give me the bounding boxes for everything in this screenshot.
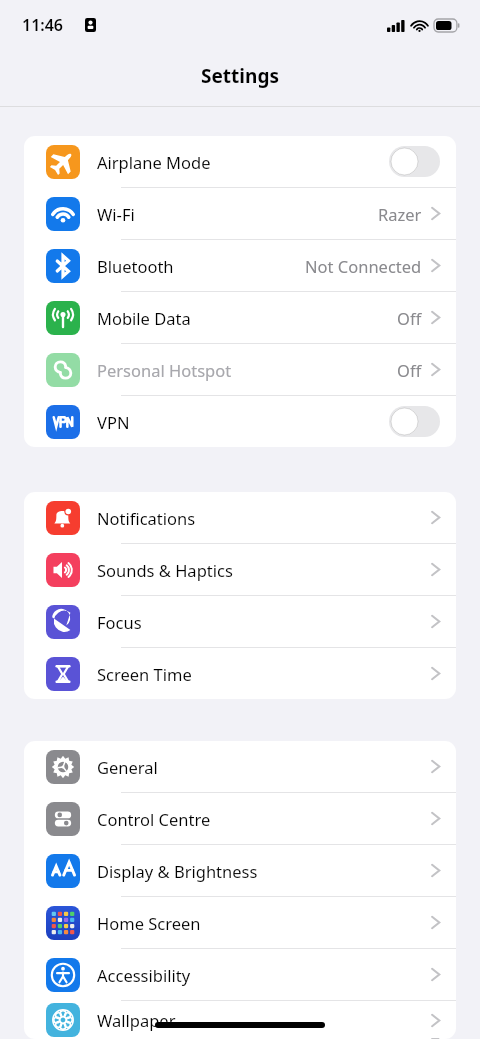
staticText: Settings [201,63,279,89]
button[interactable]: Mobile Data [24,292,456,343]
staticText: General [97,756,158,778]
staticText: Personal Hotspot [97,359,232,381]
staticText: Mobile Data [97,307,191,329]
staticText: Control Centre [97,808,211,830]
staticText: Focus [97,611,142,633]
button[interactable]: Personal Hotspot [24,344,456,395]
staticText: Notifications [97,507,196,529]
staticText: Wallpaper [97,1009,176,1031]
button[interactable]: Focus [24,596,456,647]
staticText: Screen Time [97,663,192,685]
button[interactable]: Toggle [389,406,440,437]
button[interactable]: General [24,741,456,792]
staticText: VPN [97,411,130,433]
staticText: 11:46 [22,14,64,36]
button[interactable]: Control Centre [24,793,456,844]
button[interactable]: Toggle [389,146,440,177]
button[interactable]: Wi-Fi [24,188,456,239]
staticText: Home Screen [97,912,201,934]
button[interactable]: Airplane Mode [24,136,456,187]
staticText: Accessibility [97,964,191,986]
button[interactable]: Home Screen [24,897,456,948]
button[interactable]: Sounds & Haptics [24,544,456,595]
staticText: Display & Brightness [97,860,258,882]
staticText: Airplane Mode [97,151,211,173]
staticText: Bluetooth [97,255,174,277]
button[interactable]: Notifications [24,492,456,543]
button[interactable]: Bluetooth [24,240,456,291]
staticText: Off [397,359,422,381]
button[interactable]: Wallpaper [24,1001,456,1039]
button[interactable]: VPN [24,396,456,447]
staticText: Off [397,307,422,329]
staticText: Wi-Fi [97,203,135,225]
staticText: Sounds & Haptics [97,559,233,581]
staticText: Not Connected [305,255,422,277]
button[interactable]: Screen Time [24,648,456,699]
staticText: Razer [378,203,422,225]
button[interactable]: Display & Brightness [24,845,456,896]
button[interactable]: Accessibility [24,949,456,1000]
